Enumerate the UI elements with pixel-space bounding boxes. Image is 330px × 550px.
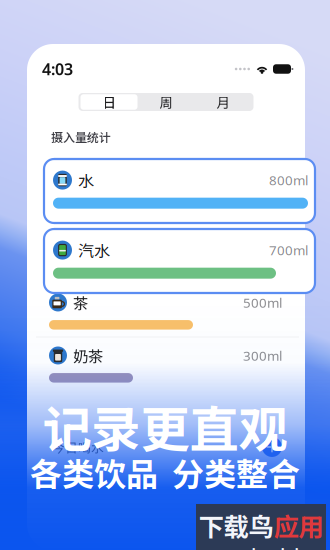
staticText: 水 bbox=[78, 168, 94, 192]
staticText: 各类饮品 分类整合 bbox=[30, 449, 300, 495]
staticText: 汽水 bbox=[78, 238, 110, 262]
staticText: 800ml bbox=[269, 171, 308, 189]
staticText: 300ml bbox=[243, 347, 282, 364]
staticText: 应用 bbox=[273, 507, 323, 544]
button[interactable]: 月 bbox=[194, 94, 251, 110]
staticText: 下载鸟 bbox=[198, 507, 273, 544]
staticText: 茶 bbox=[73, 291, 88, 314]
staticText: 700ml bbox=[269, 241, 308, 259]
staticText: 周 bbox=[159, 92, 172, 112]
staticText: 今日喝水 bbox=[52, 438, 104, 456]
button[interactable]: 水 bbox=[44, 159, 315, 223]
staticText: www.xiazainiao.com bbox=[201, 544, 320, 550]
staticText: 月 bbox=[216, 92, 229, 112]
staticText: 奶茶 bbox=[73, 344, 103, 367]
staticText: 500ml bbox=[243, 294, 282, 311]
button[interactable]: 奶茶 bbox=[27, 337, 282, 390]
button[interactable]: Add drink bbox=[262, 437, 282, 457]
staticText: 4:03 bbox=[42, 58, 73, 80]
button[interactable]: 茶 bbox=[27, 284, 282, 337]
staticText: 日 bbox=[102, 92, 115, 112]
button[interactable]: 日 bbox=[80, 94, 137, 110]
button[interactable]: 汽水 bbox=[44, 229, 315, 293]
button[interactable]: 周 bbox=[137, 94, 194, 110]
staticText: 记录更直观 bbox=[42, 390, 287, 462]
staticText: 摄入量统计 bbox=[51, 128, 111, 145]
